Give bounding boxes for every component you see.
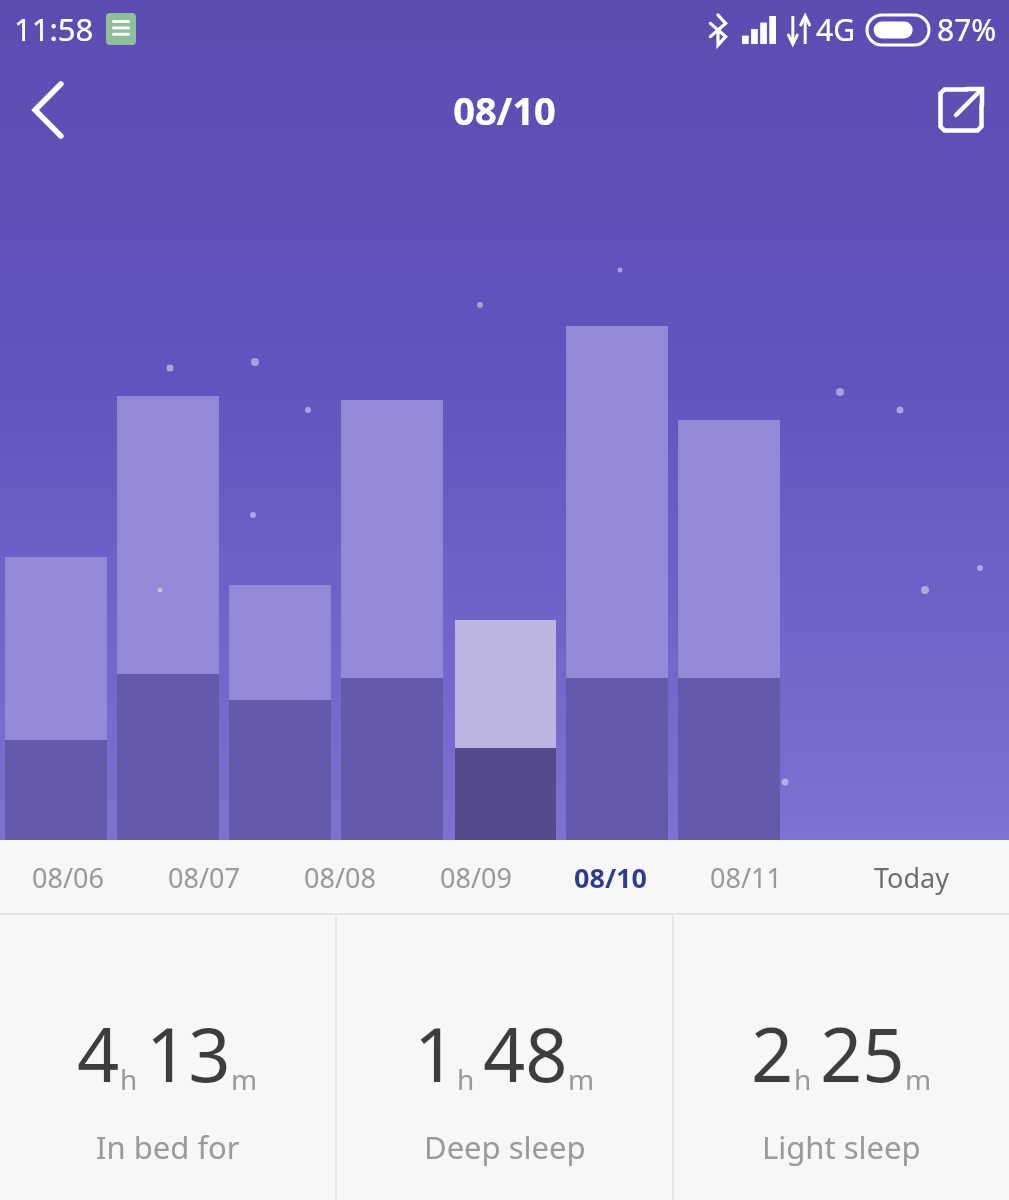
staticText: h bbox=[794, 1060, 812, 1098]
staticText: m bbox=[231, 1060, 258, 1098]
button[interactable]: 08/08 bbox=[272, 840, 408, 915]
staticText: In bed for bbox=[96, 1126, 240, 1168]
staticText: m bbox=[568, 1060, 595, 1098]
staticText: h bbox=[457, 1060, 475, 1098]
button[interactable]: 1 bbox=[337, 915, 672, 1200]
staticText: 4 bbox=[77, 1003, 120, 1104]
staticText: 08/11 bbox=[710, 859, 782, 896]
button[interactable]: 4 bbox=[0, 915, 335, 1200]
staticText: Deep sleep bbox=[424, 1126, 586, 1168]
staticText: 13 bbox=[146, 1003, 231, 1104]
staticText: 2 bbox=[751, 1003, 794, 1104]
staticText: Today bbox=[874, 859, 949, 896]
staticText: 08/10 bbox=[453, 84, 556, 136]
staticText: 08/09 bbox=[440, 859, 512, 896]
staticText: 11:58 bbox=[14, 8, 94, 50]
staticText: 08/10 bbox=[574, 859, 647, 896]
button[interactable]: 08/10 bbox=[543, 840, 678, 915]
staticText: 08/08 bbox=[304, 859, 376, 896]
staticText: 08/07 bbox=[168, 859, 240, 896]
staticText: h bbox=[120, 1060, 138, 1098]
button[interactable]: Today bbox=[813, 840, 1009, 915]
staticText: 4G bbox=[816, 9, 855, 50]
button[interactable]: Back bbox=[0, 62, 96, 158]
staticText: 48 bbox=[483, 1003, 568, 1104]
staticText: 87% bbox=[937, 9, 997, 50]
staticText: 1 bbox=[414, 1003, 457, 1104]
button[interactable]: 08/06 bbox=[0, 840, 136, 915]
button[interactable]: Share bbox=[913, 62, 1009, 158]
staticText: m bbox=[905, 1060, 932, 1098]
button[interactable]: 08/07 bbox=[136, 840, 272, 915]
staticText: 08/06 bbox=[32, 859, 104, 896]
staticText: 25 bbox=[820, 1003, 905, 1104]
button[interactable]: 08/09 bbox=[408, 840, 543, 915]
button[interactable]: 08/11 bbox=[678, 840, 813, 915]
button[interactable]: 2 bbox=[674, 915, 1009, 1200]
staticText: Light sleep bbox=[762, 1126, 921, 1168]
